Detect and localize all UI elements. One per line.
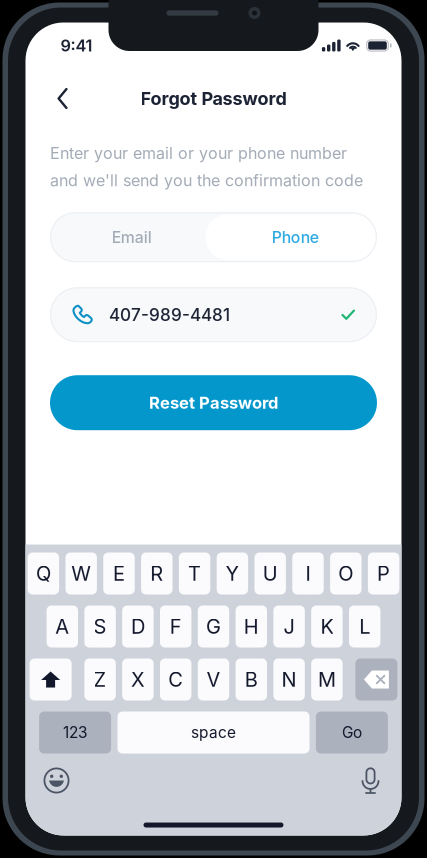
button[interactable]: Delete: [355, 658, 397, 700]
button[interactable]: O: [330, 552, 361, 594]
button[interactable]: V: [198, 658, 229, 700]
staticText: 407-989-4481: [109, 304, 230, 325]
staticText: O: [338, 561, 353, 586]
button[interactable]: F: [160, 605, 191, 647]
staticText: L: [359, 614, 370, 639]
button[interactable]: Reset Password: [50, 375, 377, 430]
staticText: T: [188, 561, 201, 586]
staticText: H: [244, 614, 259, 639]
button[interactable]: Shift: [30, 658, 72, 700]
staticText: B: [245, 667, 258, 692]
staticText: X: [131, 667, 145, 692]
button[interactable]: N: [273, 658, 305, 700]
button[interactable]: H: [236, 605, 267, 647]
staticText: V: [206, 667, 220, 692]
button[interactable]: D: [122, 605, 154, 647]
button[interactable]: E: [103, 552, 135, 594]
staticText: N: [282, 667, 297, 692]
staticText: E: [113, 561, 125, 586]
button[interactable]: J: [273, 605, 305, 647]
button[interactable]: Q: [28, 552, 59, 594]
button[interactable]: B: [236, 658, 267, 700]
staticText: C: [168, 667, 183, 692]
staticText: Q: [36, 561, 51, 586]
button[interactable]: Dictate: [349, 759, 391, 801]
button[interactable]: C: [160, 658, 191, 700]
button[interactable]: space: [117, 711, 309, 753]
button[interactable]: 123: [39, 711, 111, 753]
button[interactable]: I: [292, 552, 324, 594]
button[interactable]: M: [311, 658, 343, 700]
staticText: Phone: [272, 228, 319, 247]
staticText: S: [94, 614, 107, 639]
button[interactable]: Back: [42, 78, 82, 118]
staticText: G: [206, 614, 221, 639]
button[interactable]: P: [368, 552, 399, 594]
staticText: space: [191, 723, 236, 742]
staticText: A: [55, 614, 69, 639]
button[interactable]: Email: [50, 212, 213, 262]
staticText: Forgot Password: [140, 88, 286, 109]
button[interactable]: W: [65, 552, 97, 594]
staticText: P: [377, 561, 390, 586]
staticText: J: [284, 614, 295, 639]
button[interactable]: L: [349, 605, 380, 647]
button[interactable]: A: [47, 605, 78, 647]
staticText: Y: [225, 561, 239, 586]
button[interactable]: Go: [316, 711, 388, 753]
staticText: Go: [342, 723, 362, 742]
staticText: Z: [94, 667, 107, 692]
staticText: Reset Password: [149, 393, 278, 413]
button[interactable]: X: [122, 658, 154, 700]
button[interactable]: G: [198, 605, 229, 647]
button[interactable]: Y: [217, 552, 248, 594]
staticText: and we'll send you the confirmation code: [50, 171, 363, 190]
staticText: R: [150, 561, 163, 586]
button[interactable]: U: [254, 552, 286, 594]
staticText: M: [318, 667, 336, 692]
staticText: Enter your email or your phone number: [50, 143, 347, 163]
staticText: U: [263, 561, 278, 586]
button[interactable]: Z: [84, 658, 116, 700]
button[interactable]: S: [84, 605, 116, 647]
staticText: K: [320, 614, 333, 639]
button[interactable]: Phone: [213, 212, 377, 262]
button[interactable]: Emoji: [35, 759, 77, 801]
staticText: D: [131, 614, 145, 639]
staticText: W: [71, 561, 91, 586]
staticText: I: [305, 561, 310, 586]
staticText: F: [170, 614, 182, 639]
button[interactable]: T: [179, 552, 210, 594]
button[interactable]: K: [311, 605, 343, 647]
button[interactable]: R: [141, 552, 172, 594]
staticText: 123: [63, 723, 87, 742]
staticText: Email: [112, 228, 152, 247]
staticText: 9:41: [60, 36, 92, 55]
